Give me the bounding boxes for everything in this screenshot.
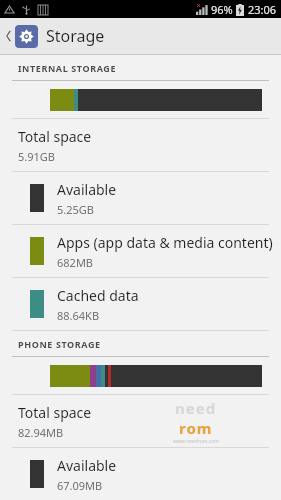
button[interactable]: Total space xyxy=(0,395,281,447)
staticText: 96% xyxy=(211,2,233,17)
staticText: INTERNAL STORAGE xyxy=(18,62,117,74)
button[interactable]: Back to Settings xyxy=(0,18,281,54)
staticText: 82.94MB xyxy=(18,425,64,440)
staticText: Apps (app data & media content) xyxy=(57,233,273,252)
staticText: 682MB xyxy=(57,255,94,270)
staticText: 67.09MB xyxy=(57,478,103,493)
staticText: Cached data xyxy=(57,286,139,305)
staticText: Total space xyxy=(18,403,92,422)
staticText: rom xyxy=(179,418,213,438)
staticText: Available xyxy=(57,180,117,199)
staticText: Storage xyxy=(46,25,105,47)
staticText: Available xyxy=(57,456,117,475)
staticText: Total space xyxy=(18,127,92,146)
staticText: PHONE STORAGE xyxy=(18,338,101,350)
staticText: 5.91GB xyxy=(18,149,55,164)
staticText: 88.64KB xyxy=(57,308,100,323)
button[interactable]: Available xyxy=(0,172,281,224)
staticText: www.needrom.com xyxy=(173,438,219,445)
button[interactable]: Total space xyxy=(0,119,281,171)
button[interactable]: Available xyxy=(0,448,281,500)
button[interactable]: Apps (app data & media content) xyxy=(0,225,281,277)
staticText: need xyxy=(175,398,217,418)
button[interactable]: Cached data xyxy=(0,278,281,330)
staticText: 23:06 xyxy=(248,2,277,17)
staticText: 5.25GB xyxy=(57,202,94,217)
